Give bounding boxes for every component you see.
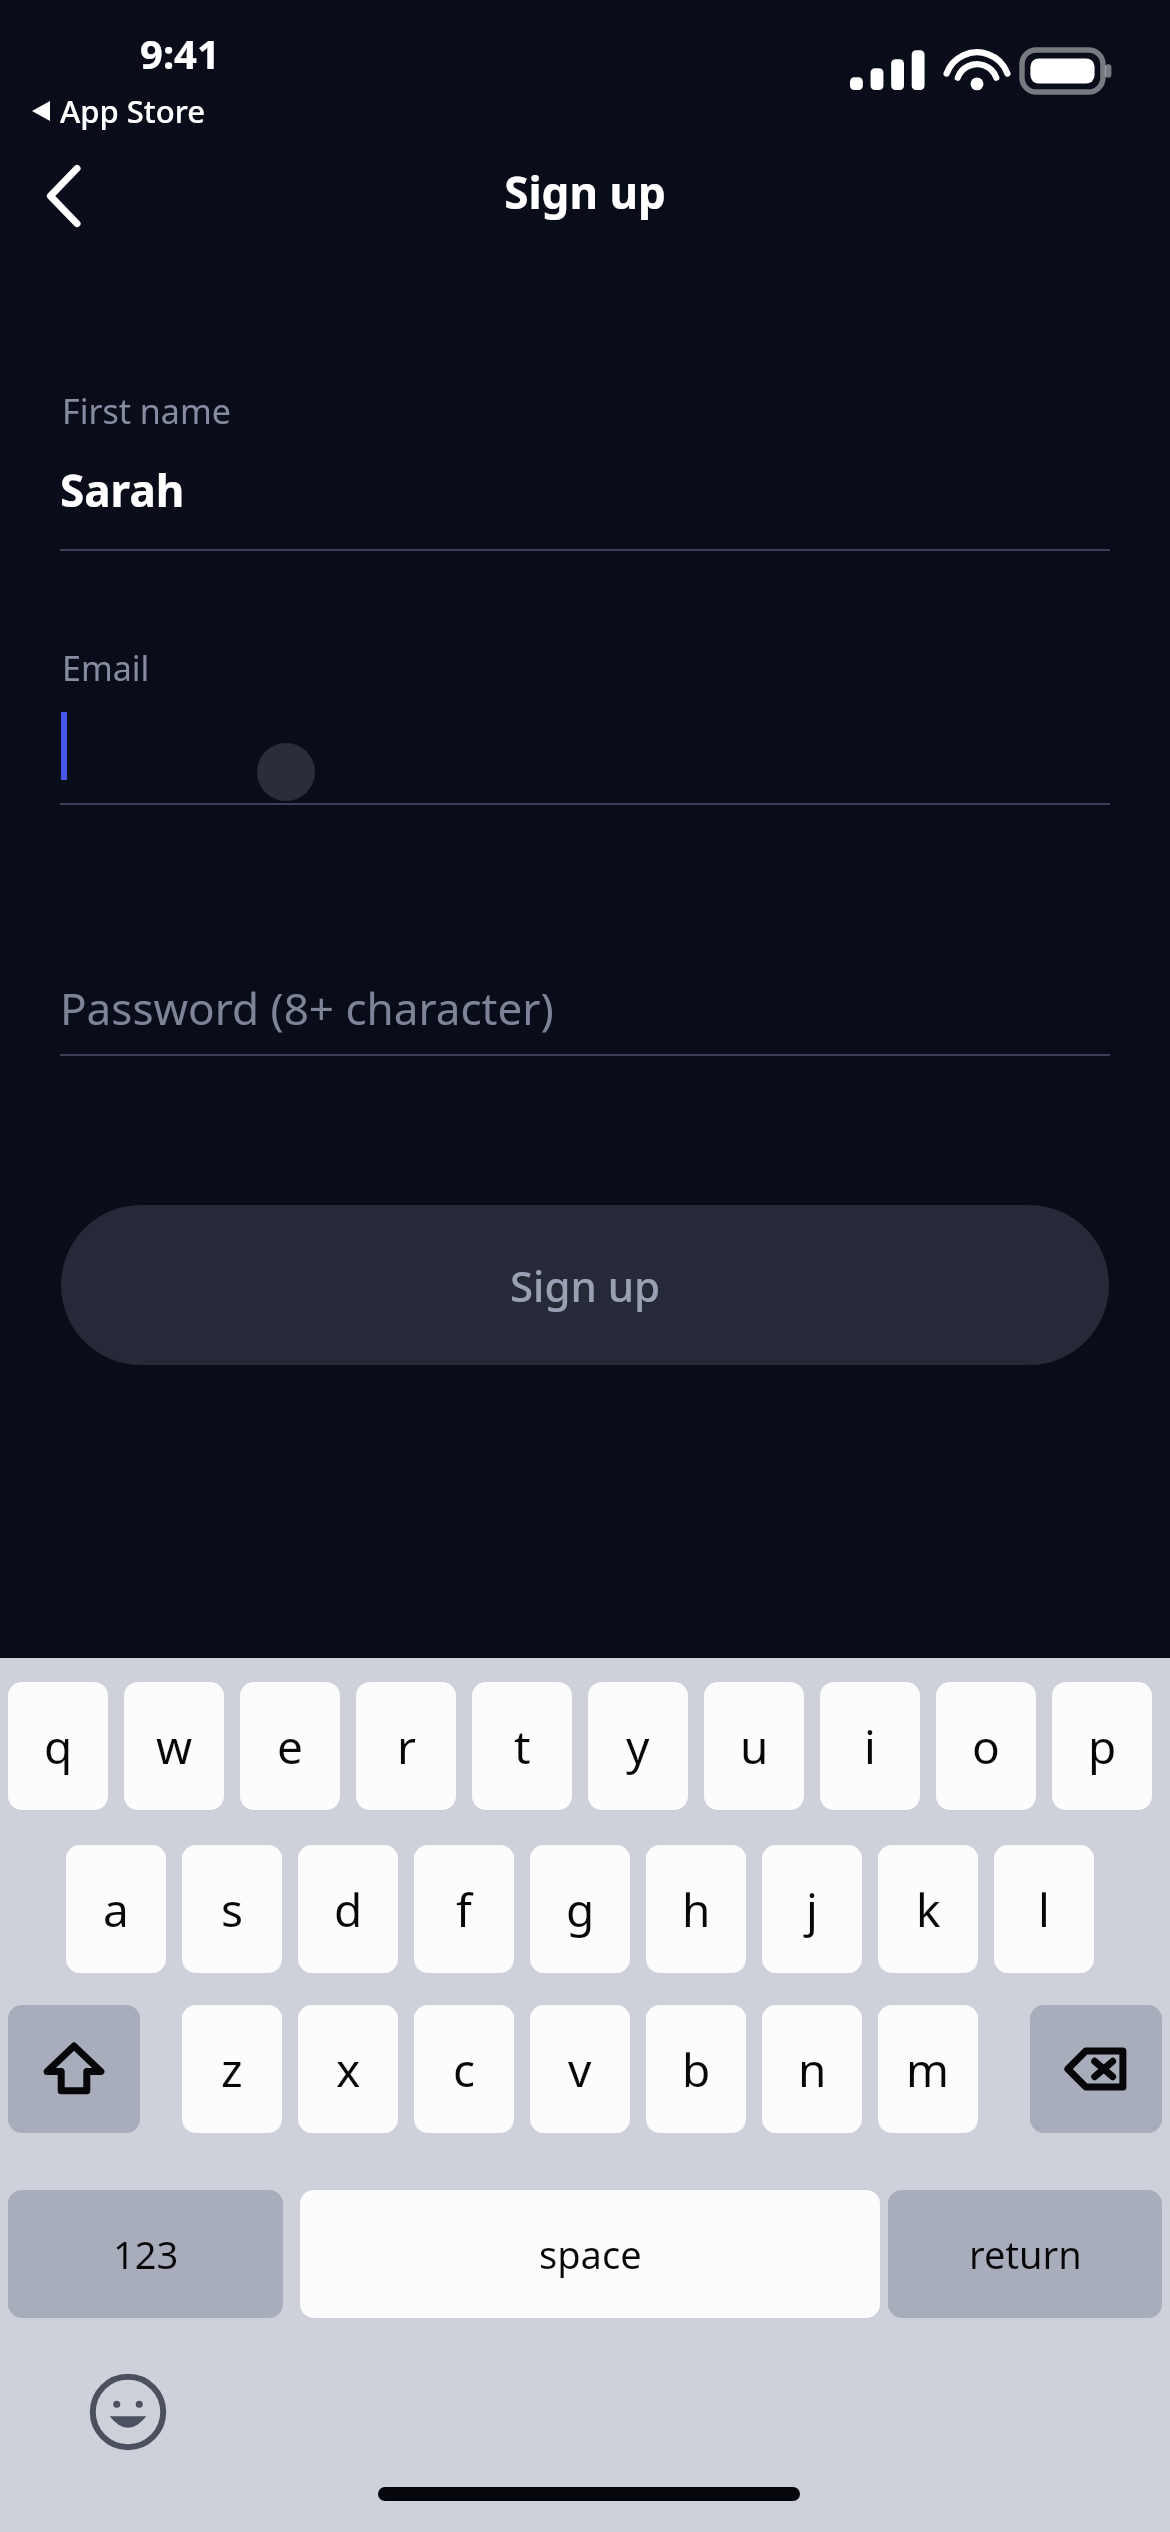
staticText: k: [916, 1878, 941, 1941]
button[interactable]: s: [182, 1845, 282, 1973]
staticText: j: [806, 1878, 818, 1941]
staticText: y: [626, 1715, 650, 1778]
staticText: t: [514, 1715, 531, 1778]
staticText: s: [221, 1878, 244, 1941]
button[interactable]: Emoji: [88, 2372, 168, 2452]
button[interactable]: i: [820, 1682, 920, 1810]
staticText: e: [277, 1715, 303, 1778]
button[interactable]: u: [704, 1682, 804, 1810]
button[interactable]: Sign up: [61, 1205, 1109, 1365]
staticText: a: [103, 1878, 129, 1941]
staticText: h: [682, 1878, 711, 1941]
button[interactable]: Shift: [8, 2005, 140, 2133]
button[interactable]: v: [530, 2005, 630, 2133]
staticText: w: [156, 1715, 193, 1778]
button[interactable]: l: [994, 1845, 1094, 1973]
staticText: m: [906, 2038, 950, 2101]
staticText: n: [798, 2038, 827, 2101]
staticText: f: [456, 1878, 472, 1941]
staticText: v: [568, 2038, 592, 2101]
staticText: d: [334, 1878, 363, 1941]
button[interactable]: space: [300, 2190, 880, 2318]
staticText: o: [972, 1715, 1000, 1778]
button[interactable]: c: [414, 2005, 514, 2133]
staticText: space: [539, 2228, 642, 2280]
button[interactable]: return: [888, 2190, 1162, 2318]
button[interactable]: b: [646, 2005, 746, 2133]
staticText: r: [397, 1715, 416, 1778]
staticText: return: [969, 2228, 1082, 2280]
button[interactable]: r: [356, 1682, 456, 1810]
button[interactable]: w: [124, 1682, 224, 1810]
staticText: i: [864, 1715, 876, 1778]
button[interactable]: a: [66, 1845, 166, 1973]
staticText: First name: [62, 388, 231, 434]
button[interactable]: n: [762, 2005, 862, 2133]
button[interactable]: d: [298, 1845, 398, 1973]
staticText: q: [44, 1715, 73, 1778]
staticText: Sarah: [60, 460, 185, 520]
button[interactable]: x: [298, 2005, 398, 2133]
button[interactable]: h: [646, 1845, 746, 1973]
button[interactable]: k: [878, 1845, 978, 1973]
staticText: Email: [62, 645, 150, 691]
staticText: App Store: [60, 90, 205, 132]
staticText: Password (8+ character): [60, 978, 554, 1038]
staticText: 123: [113, 2228, 179, 2280]
button[interactable]: g: [530, 1845, 630, 1973]
staticText: p: [1088, 1715, 1117, 1778]
staticText: c: [453, 2038, 476, 2101]
staticText: 9:41: [140, 26, 220, 80]
button[interactable]: e: [240, 1682, 340, 1810]
button[interactable]: Back: [20, 150, 112, 242]
button[interactable]: y: [588, 1682, 688, 1810]
button[interactable]: o: [936, 1682, 1036, 1810]
button[interactable]: 123: [8, 2190, 283, 2318]
button[interactable]: p: [1052, 1682, 1152, 1810]
button[interactable]: t: [472, 1682, 572, 1810]
button[interactable]: q: [8, 1682, 108, 1810]
button[interactable]: m: [878, 2005, 978, 2133]
staticText: Sign up: [0, 162, 1170, 222]
staticText: l: [1038, 1878, 1050, 1941]
button[interactable]: z: [182, 2005, 282, 2133]
staticText: b: [682, 2038, 711, 2101]
staticText: Sign up: [510, 1257, 661, 1314]
staticText: u: [740, 1715, 769, 1778]
button[interactable]: Backspace: [1030, 2005, 1162, 2133]
button[interactable]: f: [414, 1845, 514, 1973]
staticText: g: [566, 1878, 595, 1941]
staticText: z: [221, 2038, 243, 2101]
button[interactable]: j: [762, 1845, 862, 1973]
staticText: x: [336, 2038, 361, 2101]
